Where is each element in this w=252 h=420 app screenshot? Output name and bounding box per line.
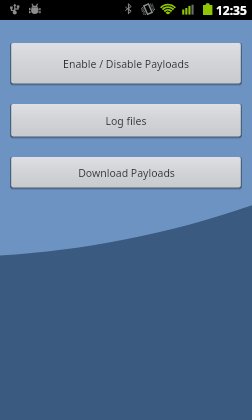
staticText: Log files [105,114,147,128]
staticText: 12:35 [216,2,247,18]
staticText: Enable / Disable Payloads [63,57,189,71]
button[interactable]: Enable / Disable Payloads [10,43,242,85]
staticText: Download Payloads [78,166,175,180]
button[interactable]: Download Payloads [10,157,242,189]
button[interactable]: Log files [10,104,242,138]
